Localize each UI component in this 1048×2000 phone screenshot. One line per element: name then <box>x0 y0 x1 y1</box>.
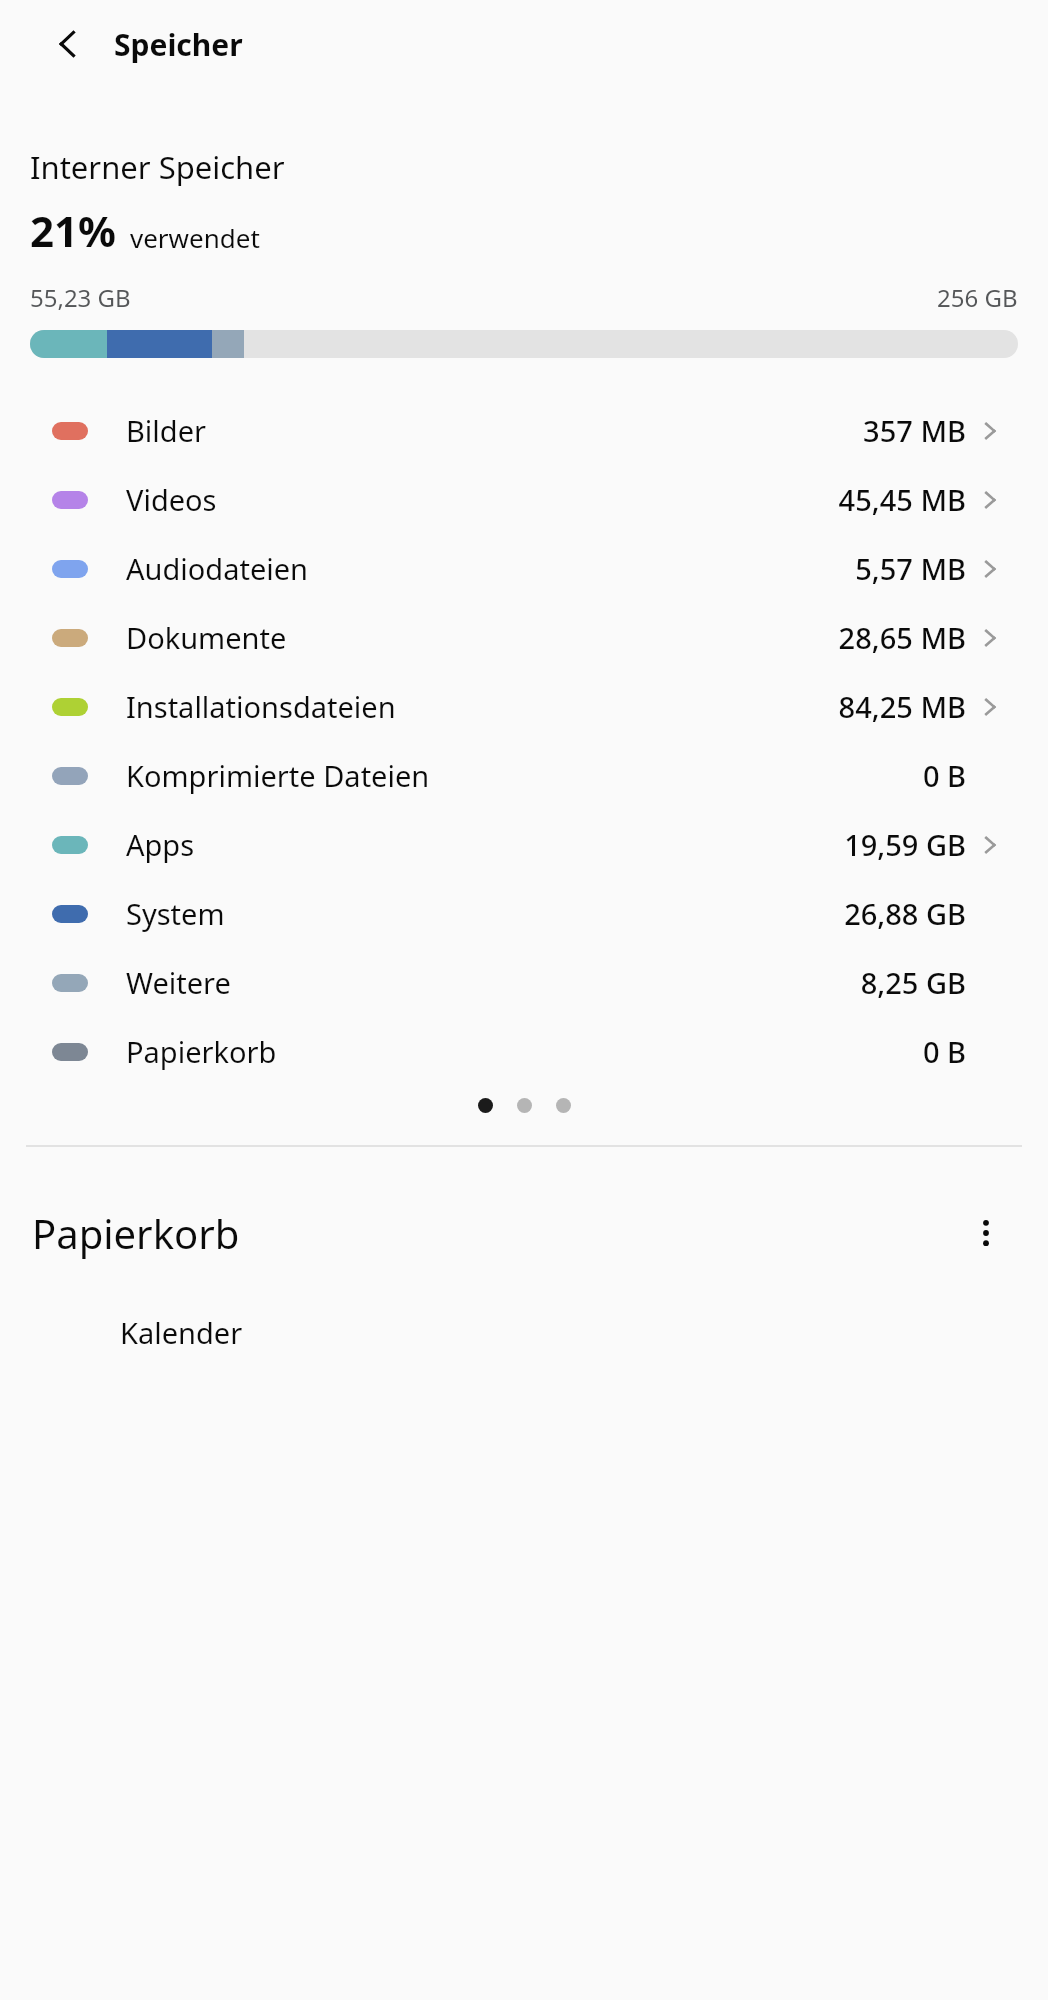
staticText: 21% <box>30 202 116 259</box>
button[interactable]: Weitere <box>0 948 1048 1017</box>
button[interactable]: Papierkorb <box>0 1017 1048 1086</box>
button[interactable]: Installationsdateien <box>0 672 1048 741</box>
staticText: 357 MB <box>863 411 966 450</box>
staticText: 0 B <box>922 756 966 795</box>
button[interactable]: Komprimierte Dateien <box>0 741 1048 810</box>
button[interactable]: System <box>0 879 1048 948</box>
staticText: 8,25 GB <box>860 963 966 1002</box>
staticText: 19,59 GB <box>844 825 966 864</box>
staticText: 55,23 GB <box>30 281 131 314</box>
staticText: Papierkorb <box>126 1032 922 1071</box>
staticText: Kalender <box>120 1313 243 1352</box>
staticText: System <box>126 894 844 933</box>
button[interactable]: Dokumente <box>0 603 1048 672</box>
staticText: Audiodateien <box>126 549 855 588</box>
staticText: Komprimierte Dateien <box>126 756 922 795</box>
button[interactable]: Bilder <box>0 396 1048 465</box>
button[interactable]: Kalender <box>0 1313 1048 1373</box>
staticText: Papierkorb <box>32 1206 958 1260</box>
staticText: 26,88 GB <box>844 894 966 933</box>
staticText: Dokumente <box>126 618 838 657</box>
staticText: Installationsdateien <box>126 687 838 726</box>
staticText: Speicher <box>114 24 243 65</box>
staticText: 256 GB <box>937 281 1018 314</box>
button[interactable]: Weitere Optionen <box>958 1205 1014 1261</box>
staticText: 5,57 MB <box>855 549 966 588</box>
staticText: verwendet <box>130 220 260 255</box>
button[interactable]: Zurück <box>40 16 96 72</box>
staticText: 84,25 MB <box>838 687 966 726</box>
staticText: 0 B <box>922 1032 966 1071</box>
button[interactable]: Audiodateien <box>0 534 1048 603</box>
staticText: Apps <box>126 825 844 864</box>
staticText: 28,65 MB <box>838 618 966 657</box>
staticText: Interner Speicher <box>30 146 285 188</box>
staticText: 45,45 MB <box>838 480 966 519</box>
staticText: Videos <box>126 480 838 519</box>
staticText: Bilder <box>126 411 863 450</box>
button[interactable]: Apps <box>0 810 1048 879</box>
staticText: Weitere <box>126 963 860 1002</box>
button[interactable]: Videos <box>0 465 1048 534</box>
